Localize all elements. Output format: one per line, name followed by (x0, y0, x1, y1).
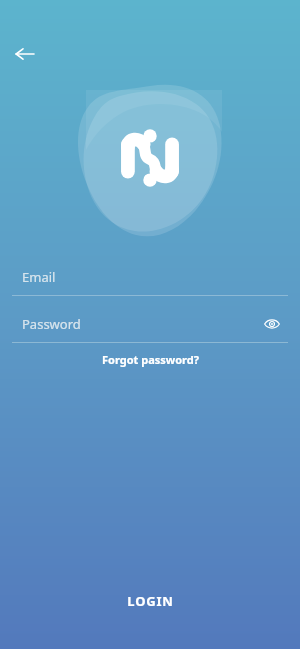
staticText: Email (22, 268, 56, 286)
staticText: Forgot password? (102, 352, 199, 367)
button[interactable]: Show password (258, 310, 286, 338)
staticText: Password (22, 315, 81, 333)
button[interactable]: Password (0, 305, 300, 342)
button[interactable]: Back (7, 36, 43, 72)
button[interactable]: Forgot password? (94, 349, 207, 370)
button[interactable]: Email (0, 258, 300, 295)
button[interactable]: LOGIN (0, 578, 300, 624)
staticText: LOGIN (127, 592, 174, 610)
